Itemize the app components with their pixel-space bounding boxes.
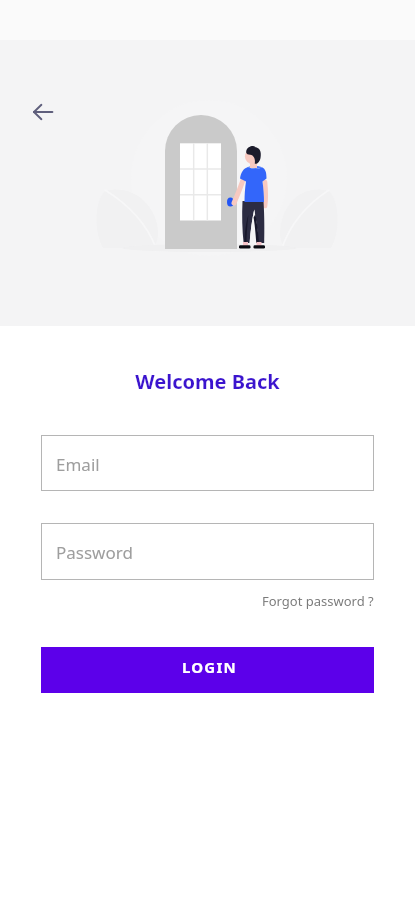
staticText: Password (56, 541, 133, 564)
button[interactable]: Forgot password ? (262, 592, 374, 610)
staticText: Email (56, 453, 100, 476)
staticText: Welcome Back (0, 368, 415, 395)
button[interactable]: Back (26, 95, 60, 129)
staticText: Forgot password ? (262, 592, 374, 610)
staticText: LOGIN (182, 657, 237, 677)
button[interactable]: Email (41, 435, 374, 491)
button[interactable]: Password (41, 523, 374, 580)
button[interactable]: LOGIN (41, 647, 374, 693)
